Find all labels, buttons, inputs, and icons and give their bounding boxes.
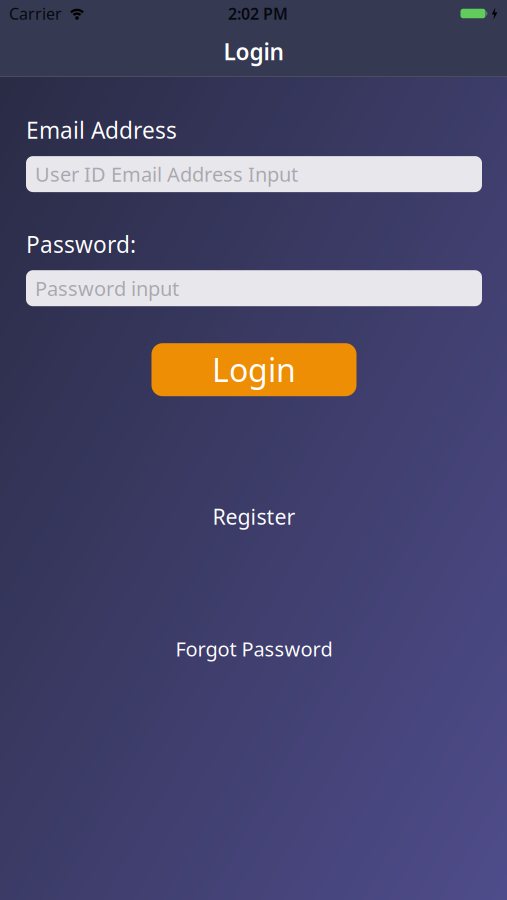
button[interactable]: User ID Email Address Input	[26, 156, 482, 192]
staticText: Login	[223, 36, 283, 66]
staticText: 2:02 PM	[228, 3, 288, 24]
staticText: Forgot Password	[175, 635, 332, 662]
button[interactable]: Password input	[26, 270, 482, 306]
staticText: Register	[212, 502, 295, 530]
staticText: Password:	[26, 229, 136, 259]
staticText: Password input	[35, 275, 179, 301]
staticText: Carrier	[9, 3, 62, 24]
button[interactable]: Forgot Password	[175, 635, 332, 662]
staticText: Email Address	[26, 115, 177, 145]
staticText: Login	[212, 348, 296, 391]
staticText: User ID Email Address Input	[35, 161, 298, 187]
button[interactable]: Login	[151, 343, 356, 396]
button[interactable]: Register	[212, 502, 295, 530]
